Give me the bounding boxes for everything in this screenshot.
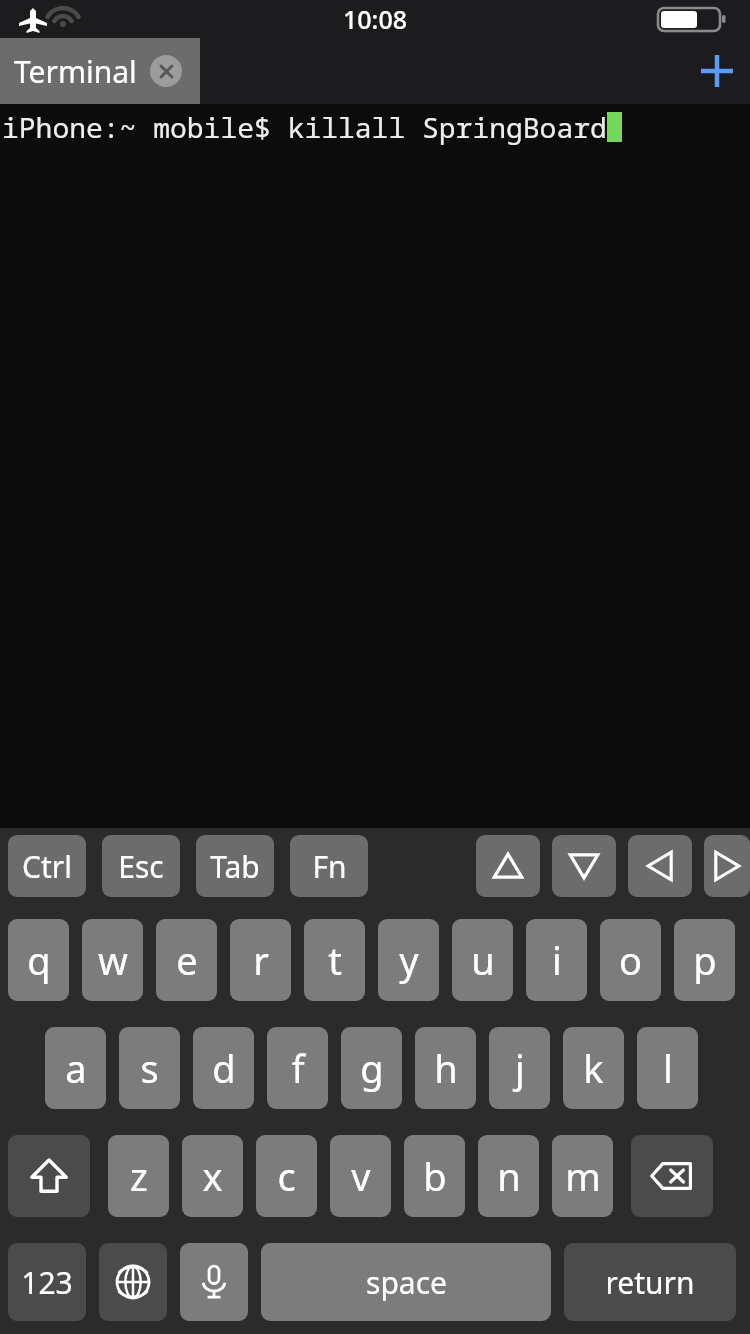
button[interactable]: r — [230, 919, 291, 1001]
button[interactable]: Arrow right — [704, 835, 750, 897]
button[interactable]: space — [261, 1243, 551, 1321]
button[interactable]: Arrow down — [552, 835, 616, 897]
staticText: n — [497, 1150, 521, 1202]
button[interactable]: e — [156, 919, 217, 1001]
staticText: a — [65, 1042, 87, 1094]
staticText: 10:08 — [343, 2, 408, 36]
staticText: i — [552, 934, 562, 986]
staticText: d — [212, 1042, 236, 1094]
button[interactable]: Close tab — [150, 55, 182, 87]
staticText: w — [98, 934, 128, 986]
button[interactable]: q — [8, 919, 69, 1001]
staticText: iPhone:~ mobile$ killall SpringBoard — [2, 108, 607, 146]
button[interactable]: z — [108, 1135, 169, 1217]
button[interactable]: Fn — [290, 835, 368, 897]
button[interactable]: return — [564, 1243, 736, 1321]
button[interactable]: Backspace — [631, 1135, 713, 1217]
button[interactable]: f — [267, 1027, 328, 1109]
button[interactable]: d — [193, 1027, 254, 1109]
staticText: s — [140, 1042, 159, 1094]
button[interactable]: New tab — [684, 38, 750, 104]
staticText: e — [176, 934, 198, 986]
staticText: u — [471, 934, 495, 986]
button[interactable]: x — [182, 1135, 243, 1217]
staticText: Esc — [118, 846, 164, 887]
staticText: b — [423, 1150, 447, 1202]
button[interactable]: u — [452, 919, 513, 1001]
staticText: Terminal — [14, 51, 137, 92]
button[interactable]: j — [489, 1027, 550, 1109]
button[interactable]: Dictate — [180, 1243, 248, 1321]
button[interactable]: l — [637, 1027, 698, 1109]
staticText: 123 — [21, 1262, 73, 1303]
staticText: z — [130, 1150, 148, 1202]
button[interactable]: i — [526, 919, 587, 1001]
staticText: v — [351, 1150, 371, 1202]
staticText: r — [253, 934, 269, 986]
staticText: x — [202, 1150, 223, 1202]
staticText: f — [291, 1042, 305, 1094]
button[interactable]: v — [330, 1135, 391, 1217]
button[interactable]: k — [563, 1027, 624, 1109]
staticText: return — [605, 1262, 695, 1303]
button[interactable]: p — [674, 919, 735, 1001]
button[interactable]: Change keyboard — [99, 1243, 167, 1321]
button[interactable]: Arrow left — [628, 835, 692, 897]
staticText: Tab — [210, 846, 260, 887]
button[interactable]: Tab — [196, 835, 274, 897]
button[interactable]: y — [378, 919, 439, 1001]
staticText: k — [583, 1042, 604, 1094]
staticText: c — [277, 1150, 296, 1202]
button[interactable]: Terminal — [0, 38, 200, 104]
staticText: p — [693, 934, 717, 986]
button[interactable]: n — [478, 1135, 539, 1217]
staticText: y — [399, 934, 419, 986]
button[interactable]: c — [256, 1135, 317, 1217]
button[interactable]: s — [119, 1027, 180, 1109]
button[interactable]: w — [82, 919, 143, 1001]
staticText: l — [663, 1042, 673, 1094]
button[interactable]: b — [404, 1135, 465, 1217]
staticText: Ctrl — [22, 846, 72, 887]
staticText: h — [434, 1042, 458, 1094]
button[interactable]: m — [552, 1135, 613, 1217]
staticText: j — [515, 1042, 525, 1094]
staticText: m — [565, 1150, 601, 1202]
button[interactable]: 123 — [8, 1243, 86, 1321]
staticText: t — [328, 934, 342, 986]
staticText: g — [360, 1042, 384, 1094]
button[interactable]: Arrow up — [476, 835, 540, 897]
button[interactable]: Shift — [8, 1135, 90, 1217]
button[interactable]: g — [341, 1027, 402, 1109]
button[interactable]: t — [304, 919, 365, 1001]
button[interactable]: a — [45, 1027, 106, 1109]
button[interactable]: o — [600, 919, 661, 1001]
staticText: o — [619, 934, 642, 986]
staticText: space — [366, 1262, 447, 1303]
staticText: q — [27, 934, 51, 986]
staticText: Fn — [312, 846, 347, 887]
button[interactable]: Esc — [102, 835, 180, 897]
button[interactable]: Ctrl — [8, 835, 86, 897]
button[interactable]: h — [415, 1027, 476, 1109]
